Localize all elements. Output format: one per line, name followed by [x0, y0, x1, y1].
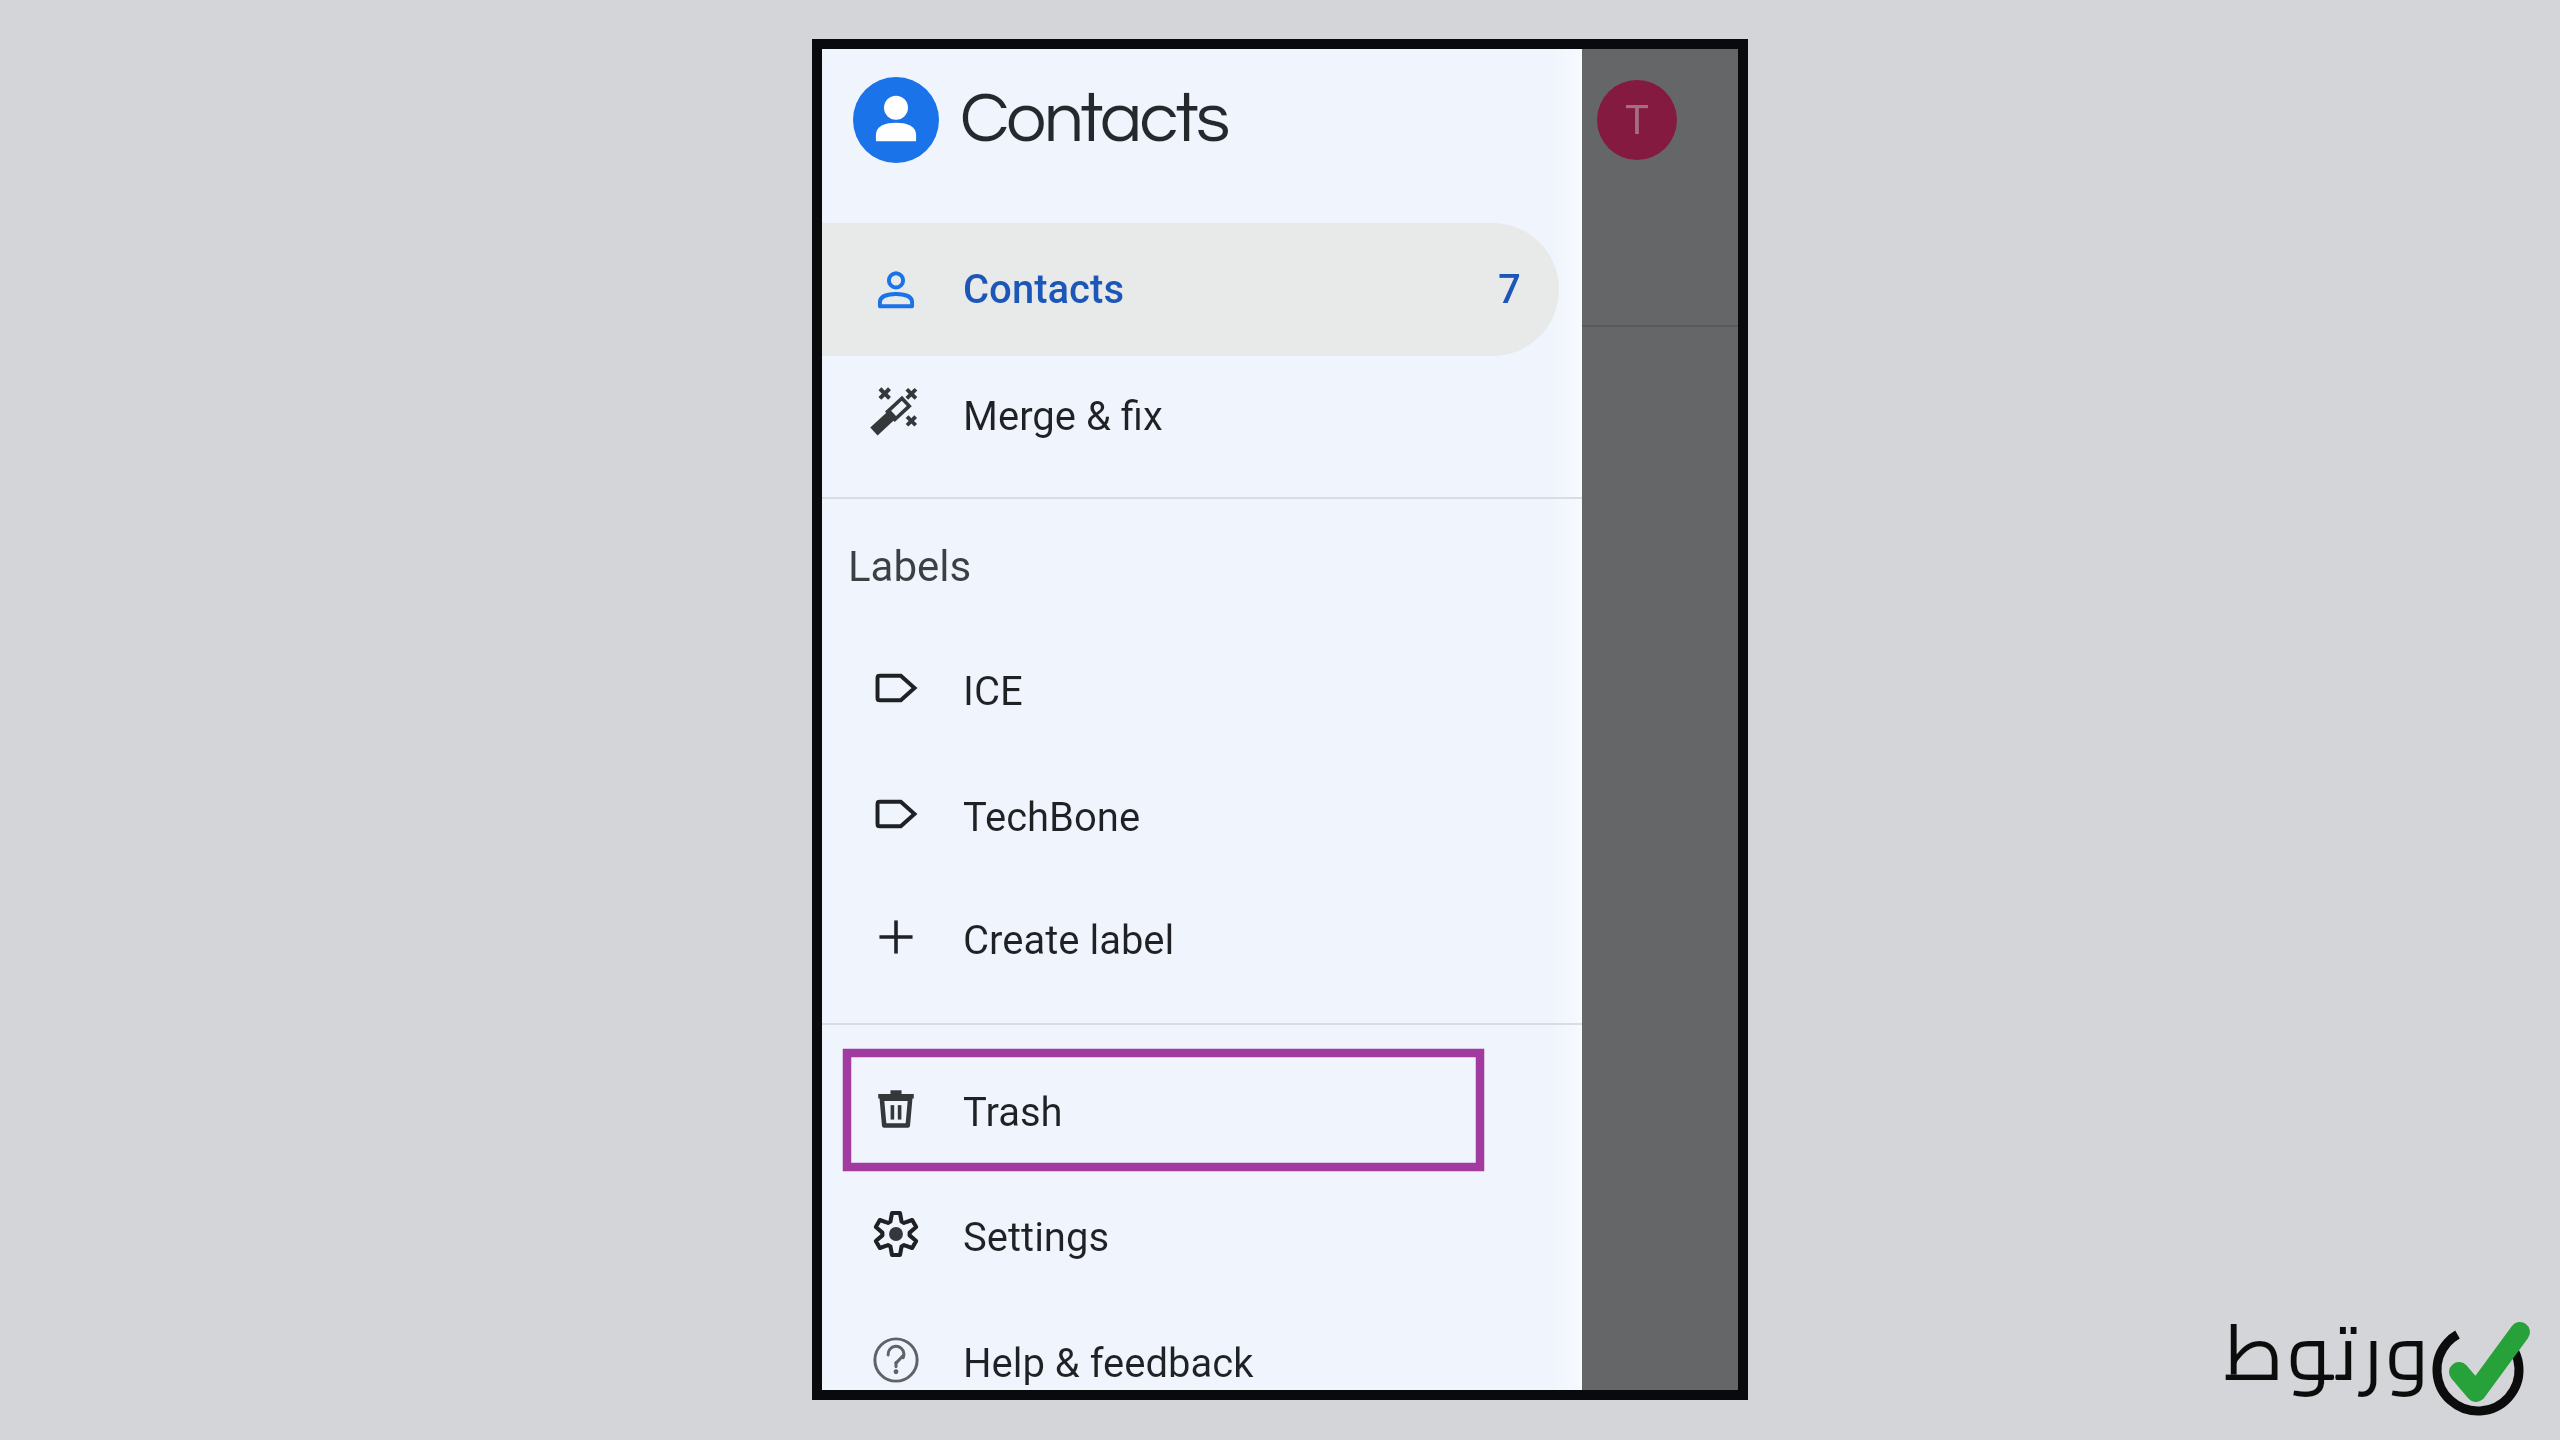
button[interactable]: Merge & fix	[822, 352, 1582, 474]
button[interactable]: Settings	[822, 1173, 1582, 1295]
button[interactable]: Create label	[822, 876, 1582, 998]
staticText: Create label	[963, 917, 1175, 964]
staticText: Settings	[963, 1214, 1110, 1261]
staticText: Labels	[848, 542, 972, 591]
button[interactable]: Contacts app	[853, 77, 939, 163]
staticText: ورتوط	[2224, 1278, 2433, 1424]
staticText: Merge & fix	[963, 393, 1163, 440]
button[interactable]: Account	[1597, 80, 1677, 160]
staticText: T	[1625, 97, 1649, 144]
staticText: Contacts	[963, 266, 1125, 313]
other: Verified logo	[2430, 1318, 2538, 1418]
button[interactable]: ICE	[822, 627, 1582, 749]
button[interactable]: Contacts	[822, 223, 1559, 356]
staticText: TechBone	[963, 794, 1141, 841]
staticText: Contacts	[960, 83, 1228, 156]
staticText: ICE	[963, 668, 1023, 715]
button[interactable]: Help & feedback	[822, 1299, 1582, 1421]
staticText: Trash	[963, 1089, 1063, 1136]
staticText: 7	[1498, 266, 1521, 313]
button[interactable]: Trash	[822, 1048, 1582, 1170]
staticText: Help & feedback	[963, 1340, 1254, 1387]
button[interactable]: TechBone	[822, 753, 1582, 875]
